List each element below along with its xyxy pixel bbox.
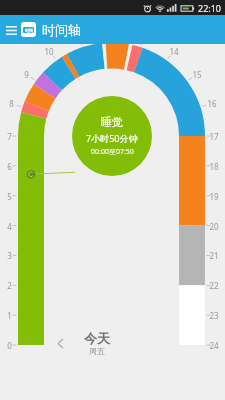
staticText: 10 xyxy=(44,46,54,57)
staticText: 16 xyxy=(207,98,217,109)
staticText: 17 xyxy=(209,131,219,142)
button[interactable]: Previous day xyxy=(52,335,68,351)
button[interactable]: 睡觉 xyxy=(72,96,152,176)
staticText: 23 xyxy=(209,310,219,321)
staticText: 0 xyxy=(7,340,12,351)
staticText: 15 xyxy=(192,69,202,80)
staticText: 2 xyxy=(7,280,12,291)
staticText: 24 xyxy=(209,340,219,351)
staticText: 14 xyxy=(169,46,179,57)
staticText: 11 xyxy=(74,31,84,42)
staticText: 21 xyxy=(209,250,219,261)
staticText: 00:00至07:50 xyxy=(91,147,134,157)
staticText: 18 xyxy=(209,161,219,172)
staticText: 周五 xyxy=(89,346,105,356)
staticText: 6 xyxy=(7,161,12,172)
staticText: 睡觉 xyxy=(101,115,123,129)
staticText: 1 xyxy=(7,310,12,321)
staticText: 22 xyxy=(209,280,219,291)
button[interactable]: Menu xyxy=(2,21,20,39)
staticText: 7小时50分钟 xyxy=(86,132,138,144)
staticText: 今天 xyxy=(84,330,110,346)
staticText: 时间轴 xyxy=(42,22,81,38)
button[interactable]: 今天 xyxy=(84,330,110,356)
staticText: 20 xyxy=(209,221,219,232)
staticText: 9 xyxy=(24,69,29,80)
staticText: 时间 xyxy=(25,28,33,33)
staticText: 3 xyxy=(7,250,12,261)
staticText: 5 xyxy=(7,191,12,202)
button[interactable]: 时间 xyxy=(21,22,36,37)
staticText: 7 xyxy=(7,131,12,142)
staticText: 8 xyxy=(9,98,14,109)
staticText: 19 xyxy=(209,191,219,202)
staticText: 4 xyxy=(7,221,12,232)
staticText: 22:10 xyxy=(198,2,222,14)
